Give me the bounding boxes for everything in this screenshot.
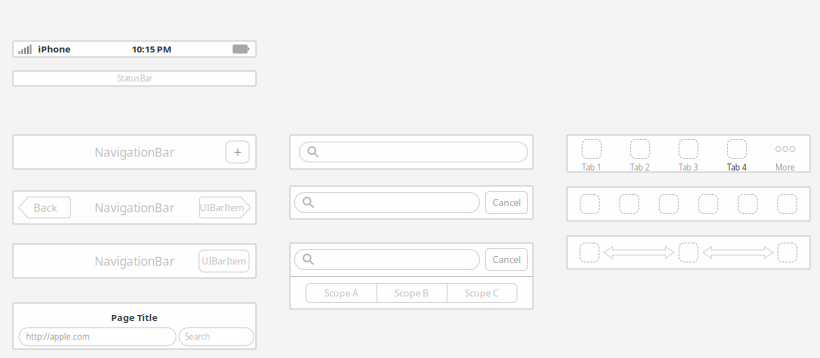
button[interactable]: Scope C: [447, 283, 517, 302]
button[interactable]: UIBarItem: [199, 196, 251, 218]
staticText: NavigationBar: [94, 144, 174, 160]
staticText: +: [233, 142, 241, 162]
button[interactable]: Tab 1: [567, 135, 616, 172]
button[interactable]: Back: [18, 196, 71, 218]
staticText: Search: [185, 331, 210, 342]
button[interactable]: Toolbar item: [619, 194, 639, 214]
staticText: Scope C: [465, 287, 499, 299]
button[interactable]: Tab 4: [713, 135, 761, 172]
button[interactable]: Toolbar item: [678, 242, 698, 262]
staticText: NavigationBar: [94, 253, 174, 269]
button[interactable]: Toolbar item: [777, 242, 797, 262]
staticText: Scope B: [394, 287, 428, 299]
staticText: http://apple.com: [26, 331, 89, 342]
staticText: NavigationBar: [94, 199, 174, 215]
staticText: Cancel: [492, 253, 520, 266]
button[interactable]: Scope A: [306, 283, 376, 302]
button[interactable]: Toolbar item: [580, 194, 600, 214]
button[interactable]: Tab 2: [616, 135, 664, 172]
button[interactable]: Tab 3: [664, 135, 713, 172]
staticText: UIBarItem: [199, 201, 244, 214]
staticText: Tab 1: [582, 162, 602, 173]
button[interactable]: More: [761, 135, 809, 172]
staticText: UIBarItem: [201, 255, 246, 267]
button[interactable]: Toolbar item: [777, 194, 797, 214]
button[interactable]: Toolbar item: [579, 242, 599, 262]
staticText: Tab 4: [727, 162, 747, 173]
button[interactable]: Cancel: [485, 248, 527, 270]
button[interactable]: Add: [226, 141, 249, 163]
staticText: 10:15 PM: [132, 43, 172, 55]
button[interactable]: Toolbar item: [738, 194, 758, 214]
staticText: Scope A: [324, 287, 358, 299]
staticText: Back: [33, 200, 57, 215]
staticText: Tab 3: [678, 162, 698, 173]
staticText: iPhone: [38, 43, 71, 55]
staticText: Tab 2: [630, 162, 650, 173]
staticText: Page Title: [111, 311, 158, 324]
button[interactable]: Cancel: [485, 191, 527, 213]
button[interactable]: Toolbar item: [698, 194, 718, 214]
staticText: More: [775, 162, 795, 173]
button[interactable]: UIBarItem: [199, 250, 249, 272]
staticText: Cancel: [492, 196, 520, 209]
button[interactable]: Scope B: [376, 283, 447, 302]
button[interactable]: Toolbar item: [659, 194, 679, 214]
staticText: StatusBar: [117, 73, 152, 84]
